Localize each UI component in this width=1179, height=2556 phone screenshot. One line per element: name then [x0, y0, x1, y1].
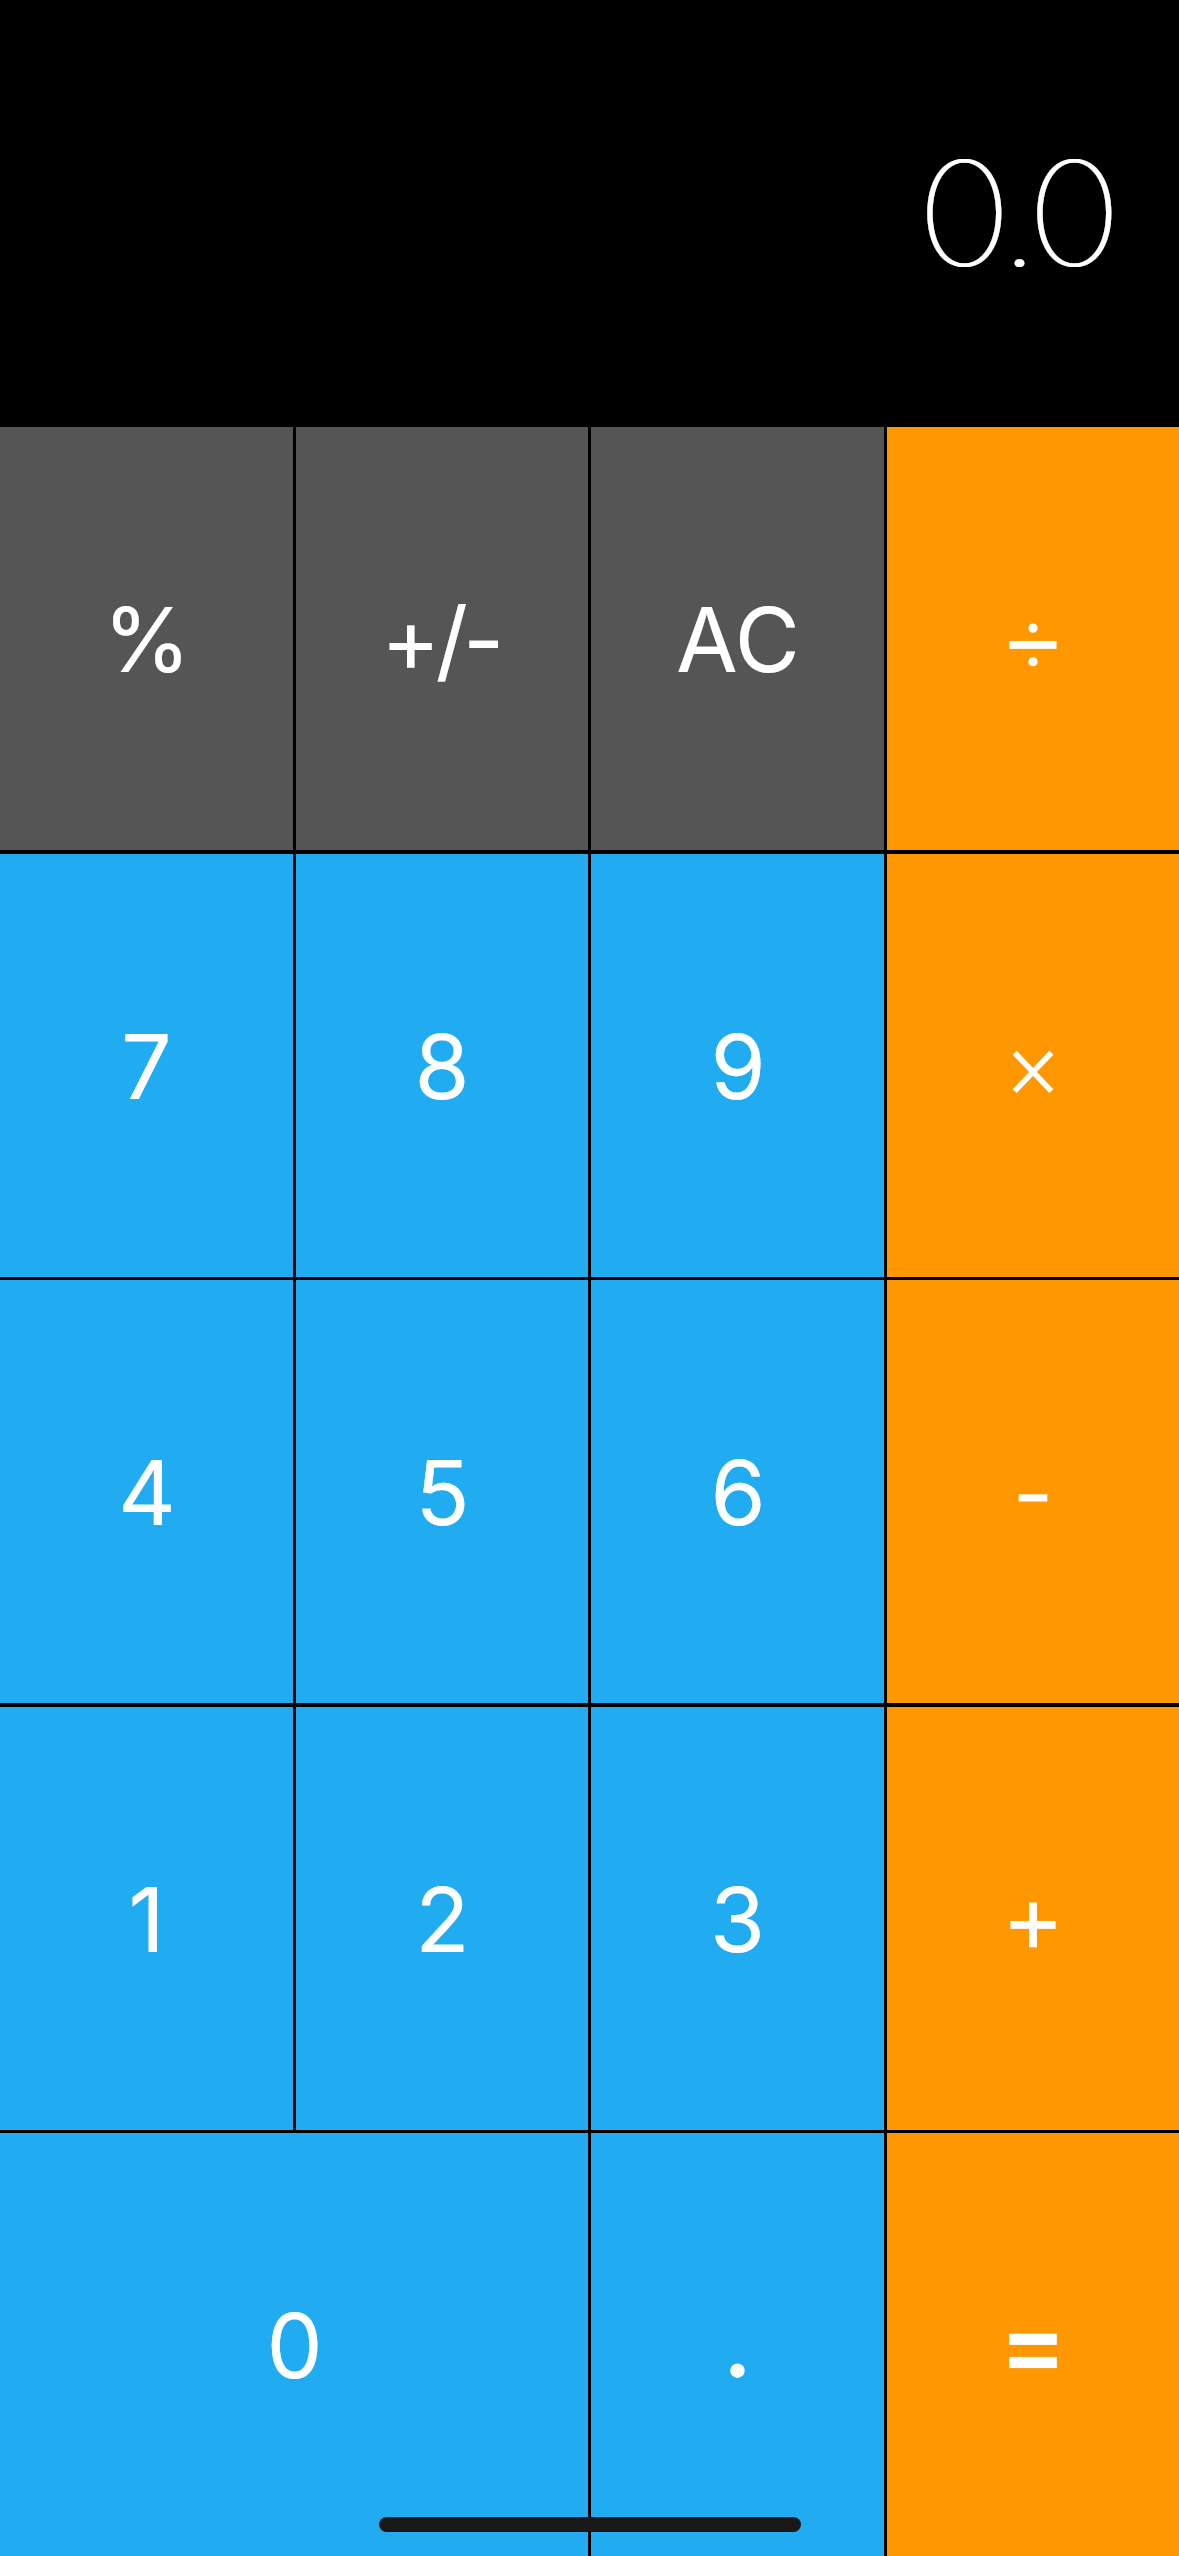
- button[interactable]: Add: [887, 1707, 1179, 2130]
- staticText: 0.0: [922, 125, 1120, 302]
- staticText: +/-: [381, 586, 500, 694]
- staticText: 9: [710, 1013, 766, 1121]
- button[interactable]: Percent: [0, 427, 293, 850]
- button[interactable]: Subtract: [887, 1280, 1179, 1703]
- staticText: %: [103, 586, 191, 694]
- staticText: AC: [676, 586, 800, 694]
- button[interactable]: Multiply: [887, 854, 1179, 1277]
- staticText: 7: [121, 1013, 172, 1121]
- staticText: 5: [415, 1439, 470, 1547]
- button[interactable]: Equals: [887, 2133, 1179, 2556]
- staticText: 2: [415, 1866, 470, 1974]
- button[interactable]: 7: [0, 854, 293, 1277]
- button[interactable]: 0: [0, 2133, 588, 2556]
- staticText: 0: [266, 2292, 323, 2400]
- button[interactable]: 9: [591, 854, 884, 1277]
- button[interactable]: 1: [0, 1707, 293, 2130]
- button[interactable]: 2: [296, 1707, 588, 2130]
- button[interactable]: Divide: [887, 427, 1179, 850]
- staticText: 3: [710, 1866, 765, 1974]
- staticText: 0.0: [924, 125, 1122, 302]
- button[interactable]: 8: [296, 854, 588, 1277]
- button[interactable]: Decimal point: [591, 2133, 884, 2556]
- button[interactable]: All clear: [591, 427, 884, 850]
- button[interactable]: Plus minus: [296, 427, 588, 850]
- button[interactable]: 6: [591, 1280, 884, 1703]
- staticText: 6: [710, 1439, 766, 1547]
- staticText: 8: [414, 1013, 470, 1121]
- button[interactable]: 5: [296, 1280, 588, 1703]
- button[interactable]: 4: [0, 1280, 293, 1703]
- button[interactable]: 3: [591, 1707, 884, 2130]
- staticText: 1: [128, 1866, 165, 1974]
- staticText: 4: [118, 1439, 176, 1547]
